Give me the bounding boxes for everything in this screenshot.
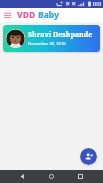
button[interactable]: Back (16, 170, 29, 183)
button[interactable]: Add baby profile (80, 148, 97, 165)
button[interactable]: Recent apps (74, 170, 87, 183)
button[interactable]: Shravi Deshpande (3, 25, 100, 52)
staticText: Shravi Deshpande (28, 30, 93, 40)
staticText: Baby (38, 9, 60, 21)
staticText: VDD (17, 9, 36, 21)
button[interactable]: Home (45, 170, 58, 183)
staticText: December 28, 2016 (28, 41, 66, 47)
button[interactable]: Open navigation menu (0, 8, 14, 22)
